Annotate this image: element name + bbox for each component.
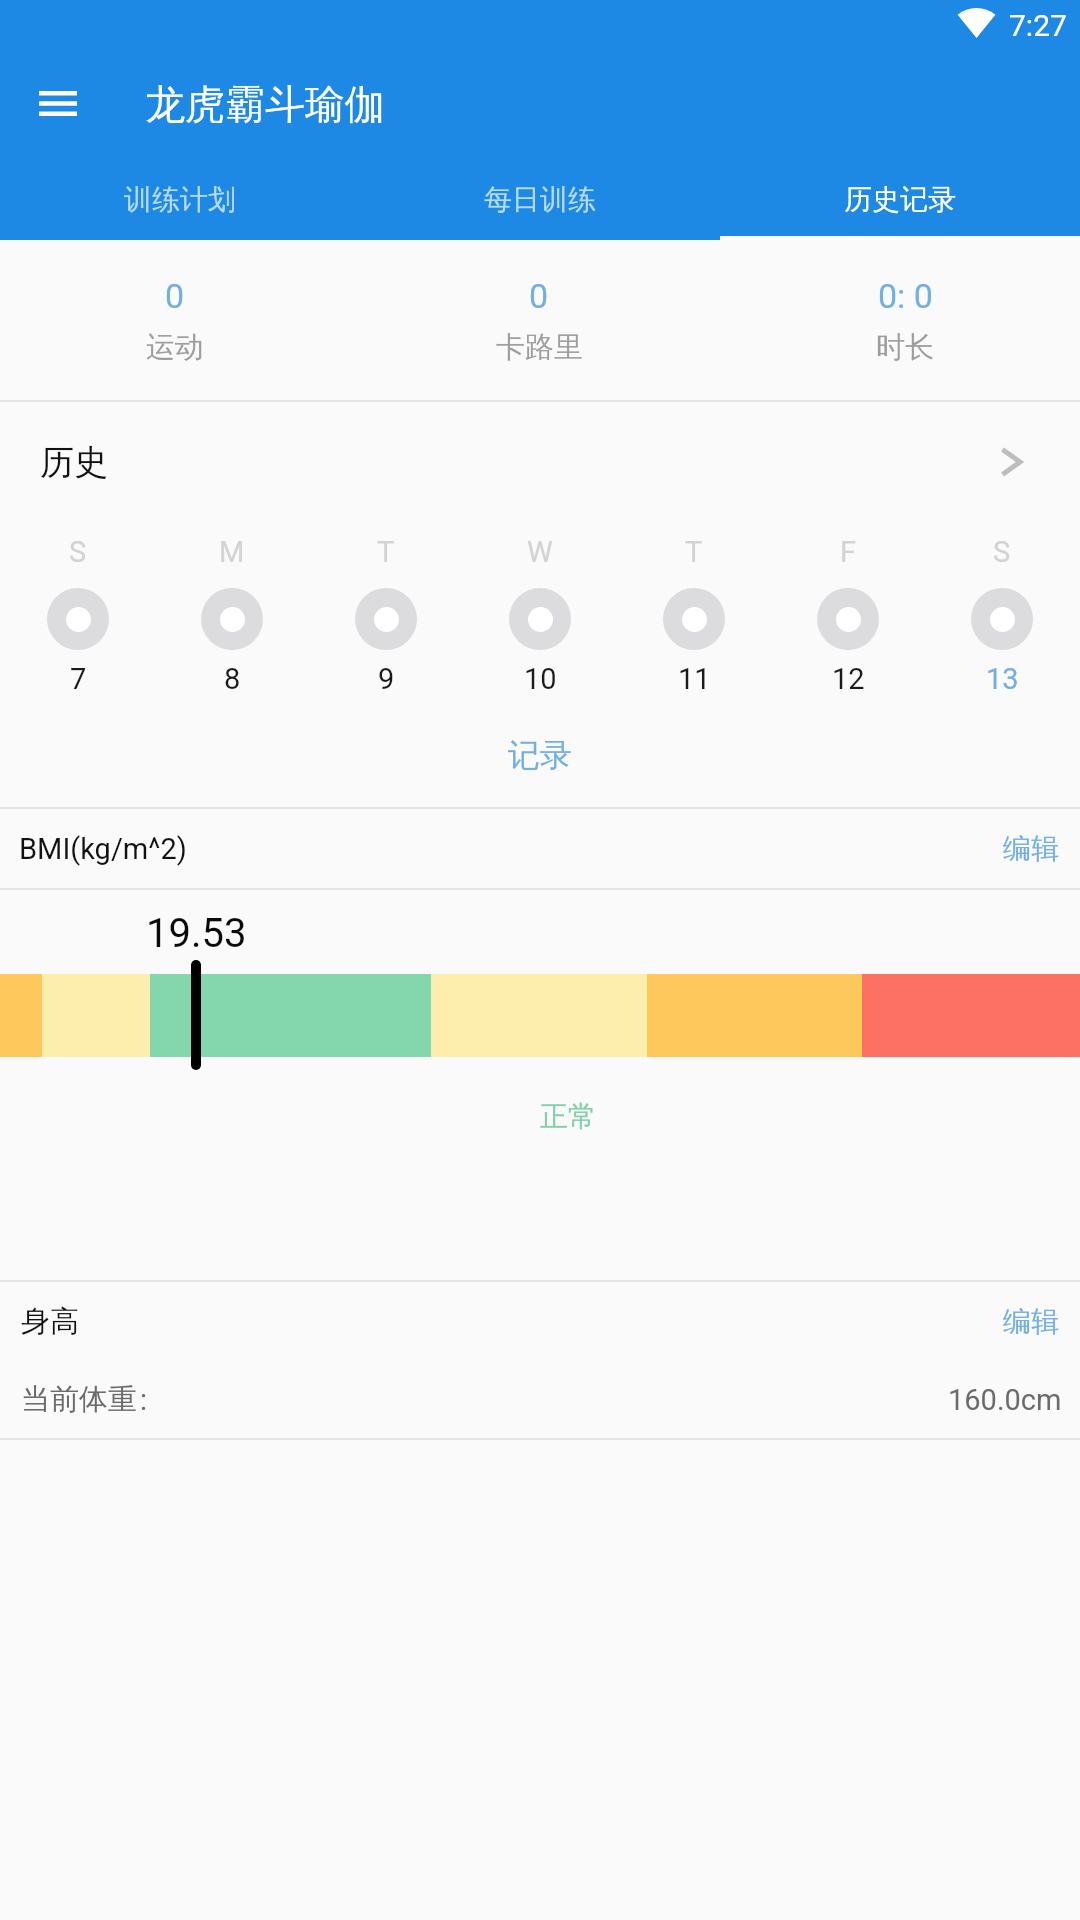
button[interactable]: 训练计划	[0, 160, 360, 240]
button[interactable]: 0: 0	[720, 240, 1080, 400]
staticText: 9	[378, 662, 395, 696]
button[interactable]: 每日训练	[360, 160, 720, 240]
other: Wi-Fi signal	[957, 7, 996, 40]
staticText: T	[685, 535, 703, 569]
button[interactable]: T	[316, 528, 456, 698]
staticText: 时长	[876, 329, 934, 366]
staticText: F	[840, 535, 857, 569]
staticText: BMI(kg/m^2)	[19, 832, 187, 866]
staticText: 记录	[508, 735, 572, 775]
staticText: 历史记录	[844, 182, 956, 217]
button[interactable]: S	[8, 528, 148, 698]
staticText: 运动	[146, 329, 204, 366]
button[interactable]: 记录	[440, 722, 640, 788]
button[interactable]: W	[470, 528, 610, 698]
staticText: S	[993, 535, 1011, 569]
staticText: 0	[165, 276, 185, 316]
staticText: 历史	[40, 441, 108, 484]
staticText: 10	[524, 662, 557, 696]
staticText: 12	[832, 662, 865, 696]
staticText: 身高	[21, 1303, 79, 1340]
button[interactable]: 编辑	[963, 809, 1080, 888]
staticText: 7	[70, 662, 87, 696]
staticText: 正常	[368, 1099, 768, 1134]
staticText: 0	[529, 276, 549, 316]
staticText: 160.0cm	[948, 1383, 1062, 1417]
staticText: 龙虎霸斗瑜伽	[145, 79, 385, 129]
staticText: S	[69, 535, 87, 569]
button[interactable]: 历史记录	[720, 160, 1080, 240]
button[interactable]: 编辑	[963, 1282, 1080, 1360]
staticText: M	[219, 535, 245, 569]
button[interactable]: Open navigation drawer	[19, 72, 97, 134]
staticText: 7:27	[1009, 8, 1067, 43]
staticText: 13	[986, 662, 1019, 696]
button[interactable]: M	[162, 528, 302, 698]
staticText: 0: 0	[878, 276, 933, 316]
staticText: 19.53	[146, 910, 247, 957]
staticText: 当前体重	[21, 1381, 137, 1418]
button[interactable]: F	[778, 528, 918, 698]
button[interactable]: 当前体重	[0, 1360, 1080, 1438]
staticText: 8	[224, 662, 241, 696]
staticText: T	[377, 535, 395, 569]
staticText: 编辑	[1003, 831, 1059, 866]
staticText: 每日训练	[484, 182, 596, 217]
staticText: 训练计划	[124, 182, 236, 217]
staticText: 11	[678, 662, 711, 696]
staticText: 卡路里	[496, 329, 583, 366]
staticText: W	[527, 535, 553, 569]
staticText: 编辑	[1003, 1304, 1059, 1339]
button[interactable]: 历史	[0, 402, 1080, 522]
button[interactable]: 0	[0, 240, 360, 400]
button[interactable]: S	[932, 528, 1072, 698]
button[interactable]: 0	[360, 240, 720, 400]
staticText: :	[140, 1383, 148, 1417]
button[interactable]: T	[624, 528, 764, 698]
